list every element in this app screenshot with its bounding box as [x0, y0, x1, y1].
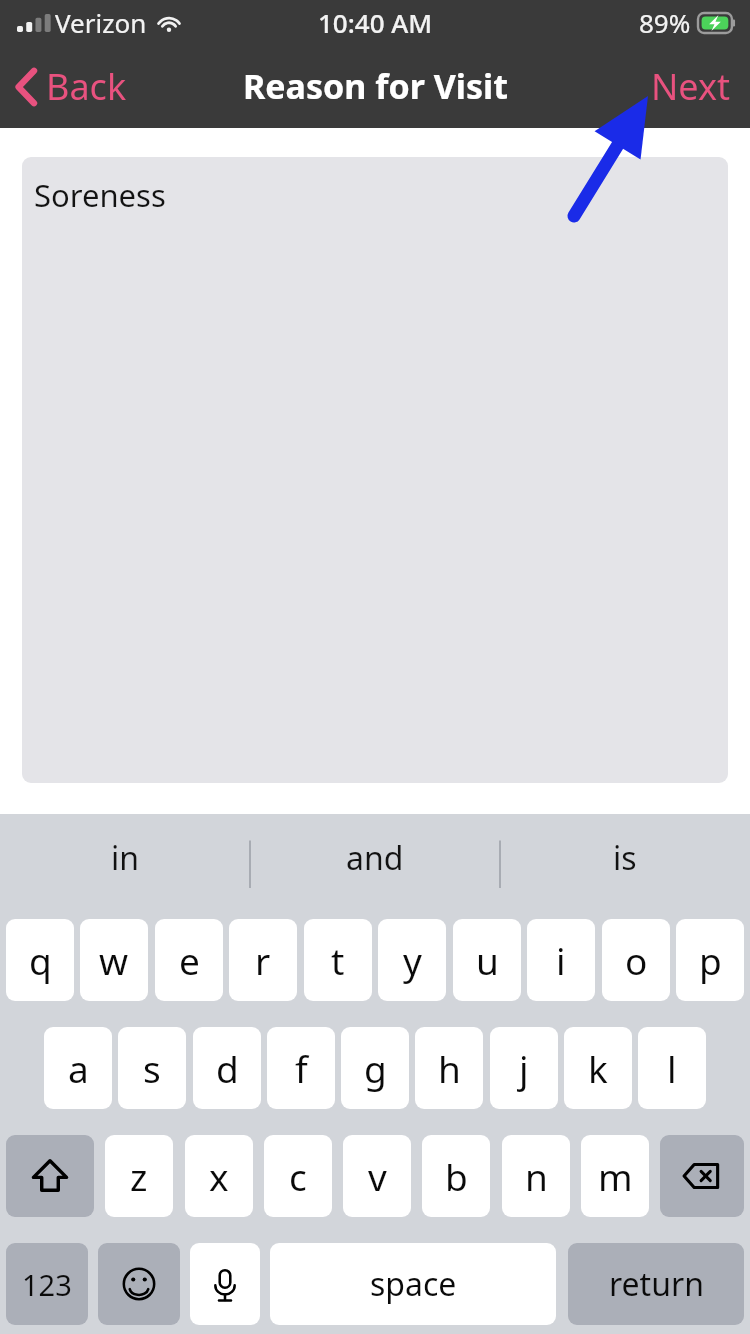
staticText: 89%	[639, 5, 691, 40]
button[interactable]: Back	[0, 50, 145, 123]
staticText: z	[130, 1151, 148, 1201]
button[interactable]: l	[638, 1027, 706, 1109]
button[interactable]: w	[80, 919, 148, 1001]
button[interactable]: n	[502, 1135, 570, 1217]
staticText: h	[438, 1043, 461, 1093]
staticText: x	[209, 1151, 229, 1201]
button[interactable]: e	[155, 919, 223, 1001]
button[interactable]: Dictate	[190, 1243, 260, 1325]
button[interactable]: j	[490, 1027, 558, 1109]
button[interactable]: space	[270, 1243, 556, 1325]
button[interactable]: f	[267, 1027, 335, 1109]
staticText: a	[68, 1043, 89, 1093]
button[interactable]: a	[44, 1027, 112, 1109]
button[interactable]: o	[602, 919, 670, 1001]
staticText: and	[346, 836, 404, 880]
staticText: q	[29, 935, 52, 985]
staticText: v	[368, 1151, 387, 1201]
button[interactable]: m	[581, 1135, 649, 1217]
staticText: in	[111, 836, 140, 880]
staticText: e	[179, 935, 200, 985]
staticText: p	[699, 935, 722, 985]
button[interactable]: t	[304, 919, 372, 1001]
staticText: f	[295, 1043, 308, 1093]
staticText: b	[445, 1151, 468, 1201]
staticText: Back	[46, 62, 127, 111]
staticText: r	[255, 935, 271, 985]
staticText: c	[289, 1151, 307, 1201]
button[interactable]: g	[341, 1027, 409, 1109]
staticText: Next	[651, 62, 730, 111]
staticText: s	[143, 1043, 161, 1093]
staticText: space	[370, 1262, 457, 1306]
staticText: is	[613, 836, 637, 880]
staticText: d	[216, 1043, 239, 1093]
staticText: w	[99, 935, 129, 985]
button[interactable]: z	[105, 1135, 173, 1217]
button[interactable]: y	[378, 919, 446, 1001]
staticText: k	[588, 1043, 608, 1093]
staticText: return	[609, 1262, 704, 1306]
staticText: i	[556, 935, 566, 985]
staticText: n	[525, 1151, 548, 1201]
button[interactable]: and	[250, 814, 500, 902]
staticText: g	[364, 1043, 387, 1093]
button[interactable]: p	[676, 919, 744, 1001]
staticText: j	[519, 1043, 529, 1093]
staticText: y	[403, 935, 422, 985]
staticText: Soreness	[34, 174, 166, 216]
staticText: Reason for Visit	[243, 63, 508, 109]
button[interactable]: Emoji	[98, 1243, 180, 1325]
button[interactable]: Backspace	[660, 1135, 744, 1217]
staticText: 10:40 AM	[318, 5, 433, 40]
staticText: u	[476, 935, 499, 985]
button[interactable]: k	[564, 1027, 632, 1109]
staticText: t	[331, 935, 345, 985]
staticText: m	[598, 1151, 633, 1201]
button[interactable]: in	[0, 814, 250, 902]
staticText: l	[667, 1043, 677, 1093]
button[interactable]: 123	[6, 1243, 88, 1325]
staticText: Verizon	[55, 5, 147, 40]
button[interactable]: Next	[631, 48, 750, 125]
button[interactable]: c	[264, 1135, 332, 1217]
button[interactable]: q	[6, 919, 74, 1001]
button[interactable]: i	[527, 919, 595, 1001]
button[interactable]: x	[185, 1135, 253, 1217]
button[interactable]: h	[415, 1027, 483, 1109]
button[interactable]: is	[500, 814, 750, 902]
button[interactable]: Shift	[6, 1135, 94, 1217]
staticText: 123	[22, 1265, 72, 1304]
button[interactable]: b	[422, 1135, 490, 1217]
button[interactable]: return	[568, 1243, 744, 1325]
button[interactable]: r	[229, 919, 297, 1001]
button[interactable]: s	[118, 1027, 186, 1109]
button[interactable]: v	[343, 1135, 411, 1217]
staticText: o	[625, 935, 648, 985]
button[interactable]: u	[453, 919, 521, 1001]
button[interactable]: Soreness	[22, 157, 728, 783]
button[interactable]: d	[193, 1027, 261, 1109]
